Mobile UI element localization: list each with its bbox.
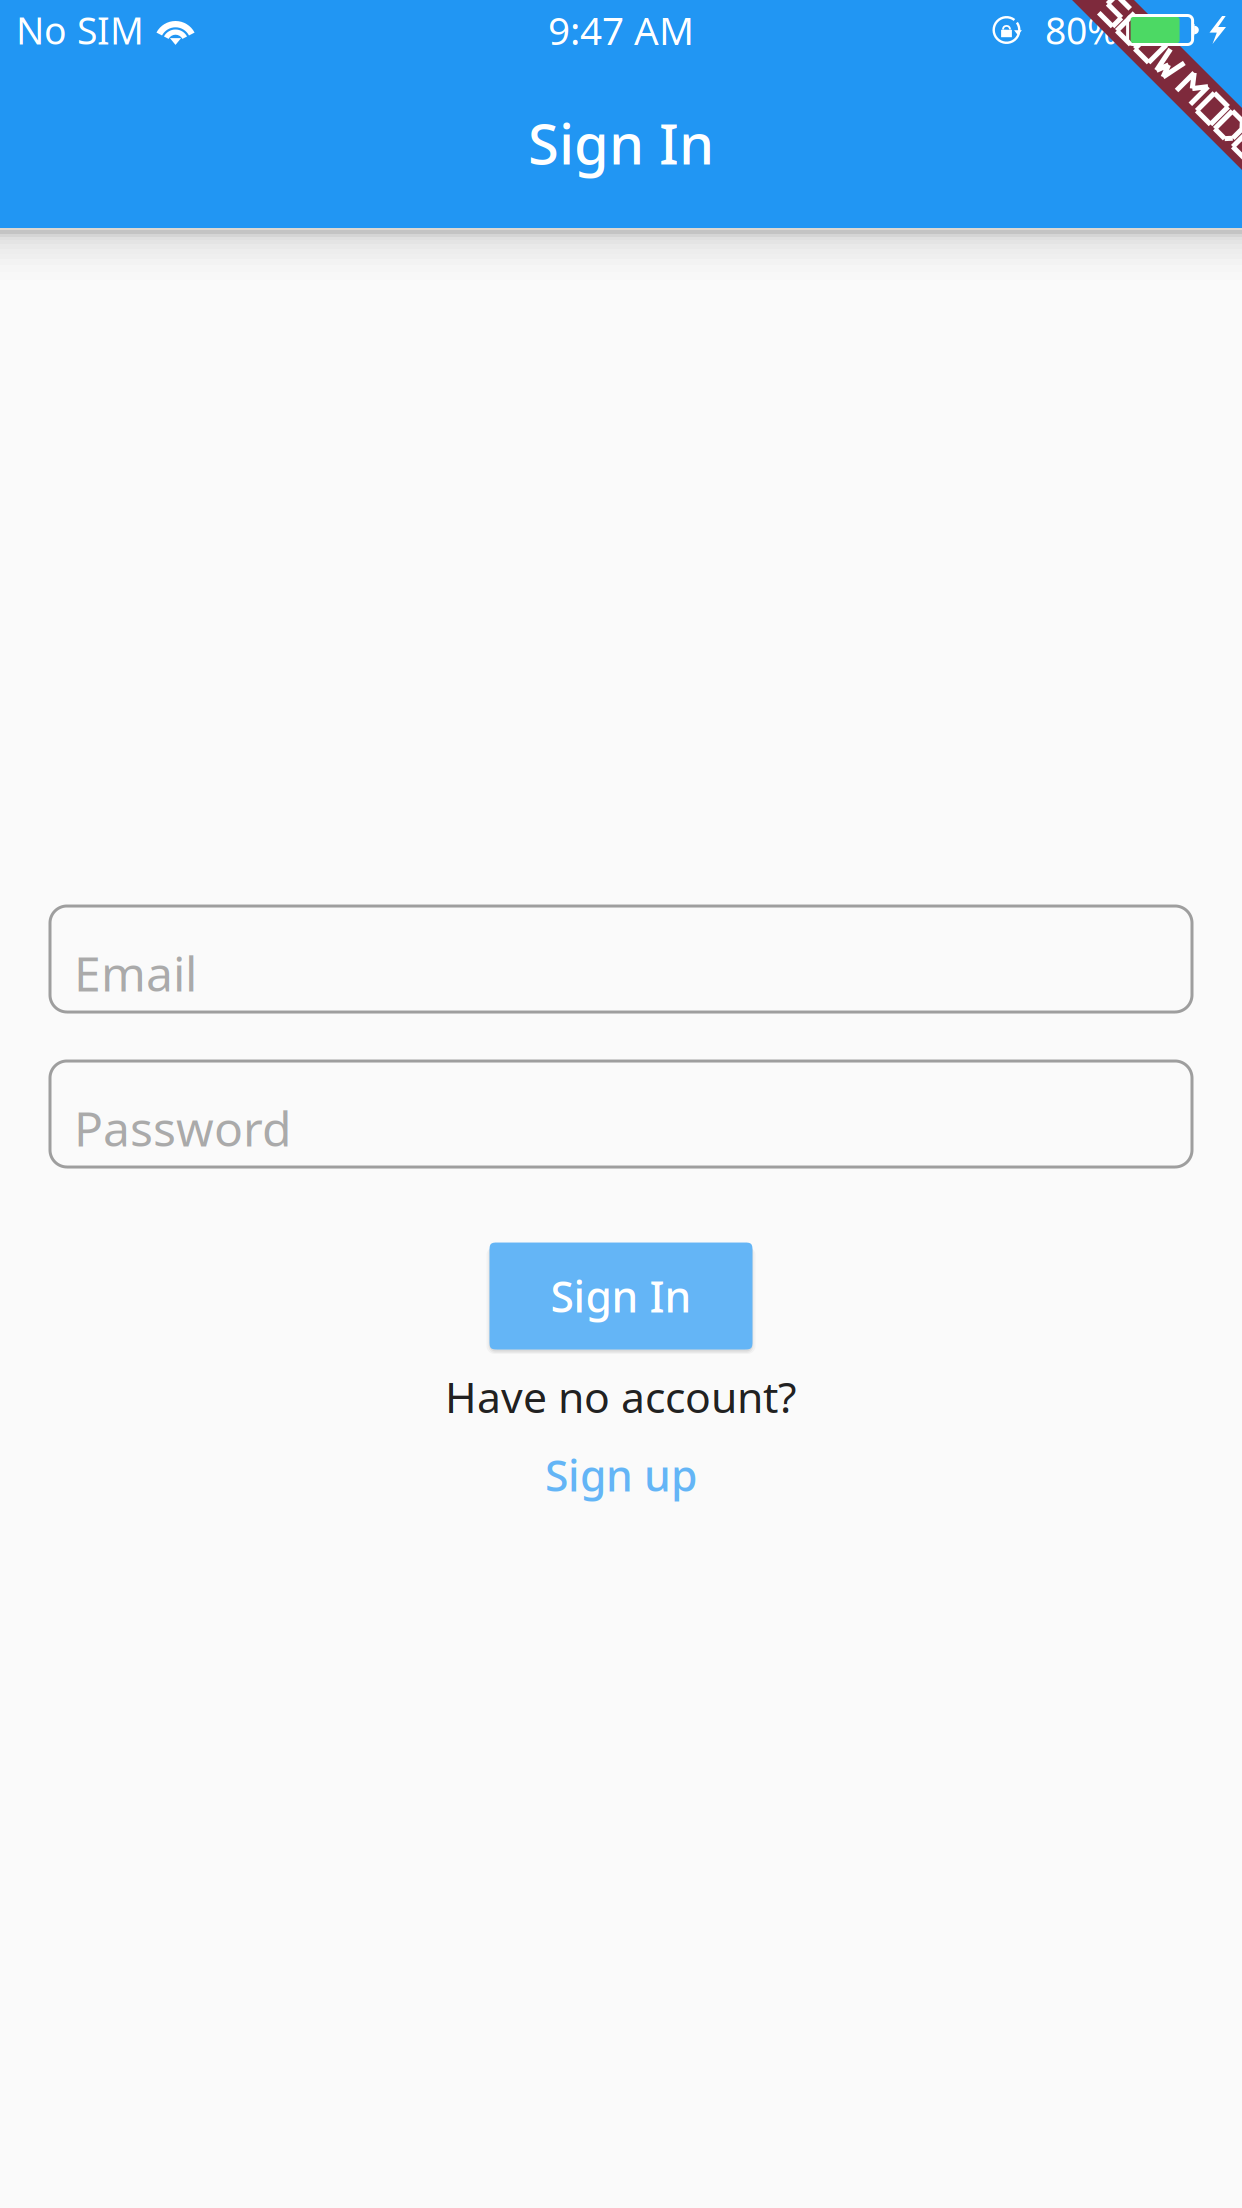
button[interactable]: Sign In	[481, 1233, 761, 1359]
staticText: Sign up	[545, 1447, 697, 1503]
button[interactable]: Password	[50, 1061, 1192, 1167]
staticText: Email	[74, 941, 197, 1005]
staticText: Password	[74, 1096, 292, 1160]
staticText: 80%	[1045, 5, 1118, 55]
staticText: No SIM	[16, 5, 144, 55]
staticText: Have no account?	[445, 1368, 797, 1425]
staticText: Sign In	[550, 1268, 691, 1324]
button[interactable]: Sign up	[545, 1447, 697, 1503]
staticText: 9:47 AM	[548, 4, 694, 56]
staticText: Sign In	[528, 106, 714, 180]
button[interactable]: Email	[50, 906, 1192, 1012]
